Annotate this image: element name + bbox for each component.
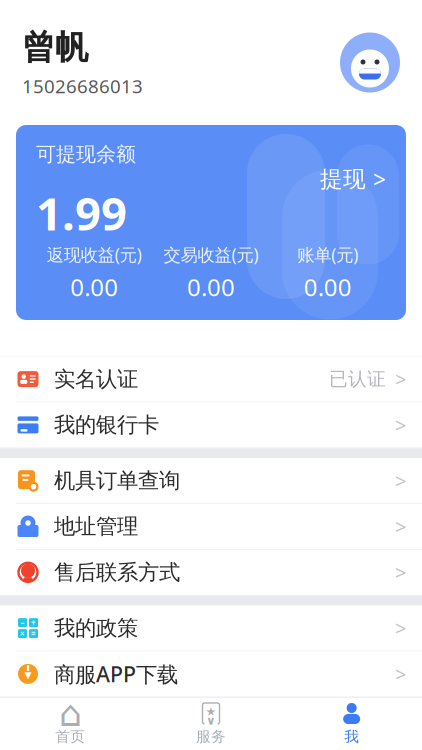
staticText: 我 [344,727,359,745]
staticText: ★ [205,705,216,718]
staticText: > [395,615,406,641]
staticText: 我的政策 [54,615,138,641]
staticText: 商服APP下载 [54,660,178,688]
staticText: > [395,366,406,392]
staticText: > [395,412,406,438]
staticText: > [395,513,406,540]
staticText: 服务 [196,727,226,745]
button[interactable]: 售后联系方式 [0,550,422,596]
staticText: 账单(元) [297,243,358,266]
staticText: 0.00 [187,271,235,303]
staticText: ⌂ [59,693,82,734]
staticText: 交易收益(元) [163,243,258,266]
staticText: ▼ [24,670,31,680]
button[interactable]: 机具订单查询 [0,458,422,504]
button[interactable]: 我 [281,696,422,750]
staticText: 地址管理 [54,513,138,540]
button[interactable]: 提现 [320,142,386,194]
staticText: 1.99 [36,183,127,243]
staticText: 返现收益(元) [47,243,142,266]
staticText: 提现 [320,165,366,193]
button[interactable]: ⌂ [0,696,141,750]
staticText: > [373,164,386,194]
staticText: + [31,617,36,628]
button[interactable]: – [0,606,422,651]
staticText: × [20,628,25,639]
staticText: 机具订单查询 [54,468,180,494]
staticText: 售后联系方式 [54,559,180,585]
staticText: 曾帆 [22,27,88,67]
staticText: 已认证 [329,368,386,390]
staticText: – [20,617,24,628]
staticText: 可提现余额 [36,142,136,167]
button[interactable]: 地址管理 [0,504,422,550]
staticText: 我的银行卡 [54,412,159,438]
staticText: ∨ [206,714,216,727]
staticText: 15026686013 [22,74,143,98]
staticText: 0.00 [70,271,118,303]
staticText: > [395,661,406,687]
staticText: 0.00 [304,271,352,303]
button[interactable]: Profile photo [340,32,400,92]
button[interactable]: ▼ [0,651,422,697]
button[interactable]: ★ [141,696,281,750]
button[interactable]: 我的银行卡 [0,402,422,448]
staticText: 首页 [55,727,85,745]
staticText: = [31,628,36,639]
button[interactable]: 实名认证 [0,357,422,402]
staticText: 实名认证 [54,366,138,392]
staticText: > [395,467,406,494]
staticText: > [395,559,406,586]
